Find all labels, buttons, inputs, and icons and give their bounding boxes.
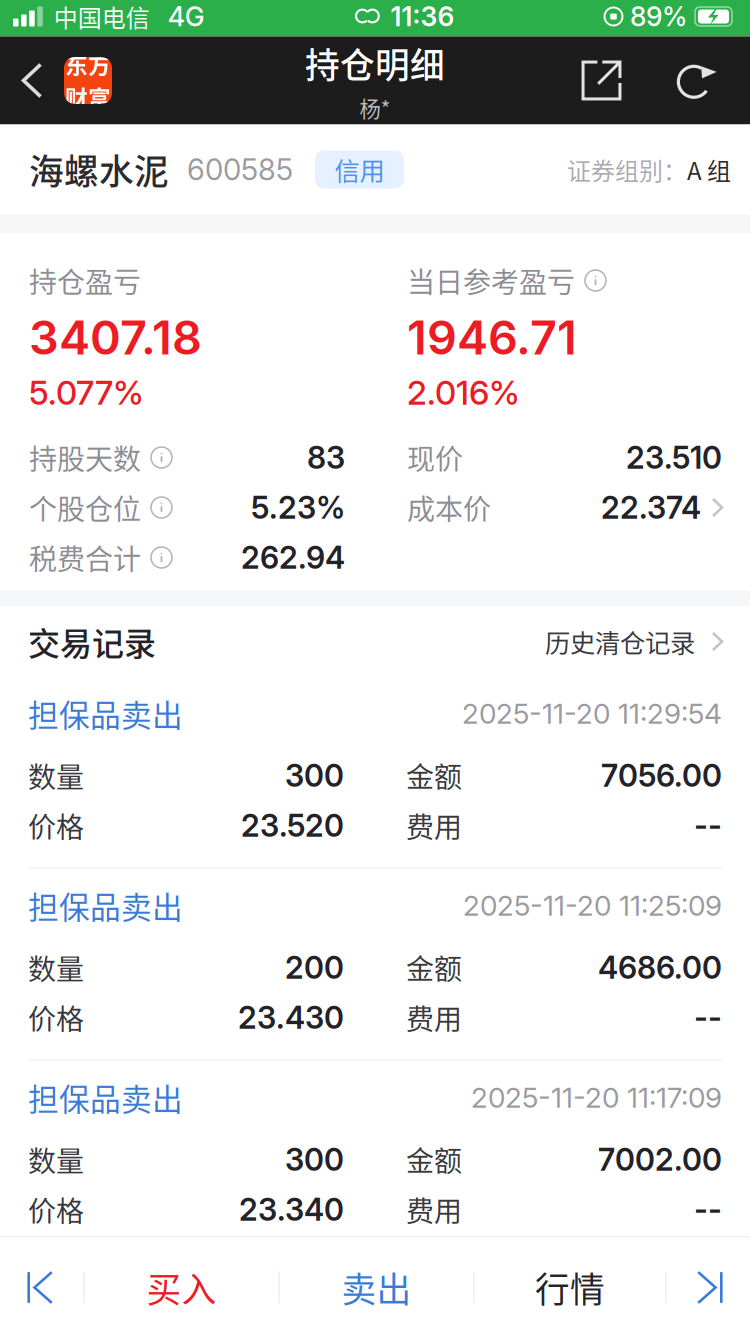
staticText: 4G (168, 0, 205, 33)
staticText: -- (694, 1191, 722, 1228)
staticText: 费用 (406, 805, 462, 846)
staticText: 价格 (28, 1189, 84, 1230)
staticText: 买入 (146, 1262, 216, 1313)
staticText: 担保品卖出 (28, 883, 183, 928)
staticText: 价格 (28, 997, 84, 1038)
staticText: 23.510 (626, 439, 722, 476)
staticText: 成本价 (407, 487, 491, 528)
staticText: 数量 (28, 947, 84, 988)
button[interactable]: 信用 (315, 150, 404, 188)
staticText: 海螺水泥 (29, 144, 169, 195)
staticText: 600585 (187, 152, 293, 187)
staticText: 价格 (28, 805, 84, 846)
staticText: 历史清仓记录 (545, 623, 695, 660)
staticText: 22.374 (601, 489, 701, 526)
button[interactable]: 上一条 (0, 1237, 83, 1334)
staticText: 金额 (406, 1139, 462, 1180)
staticText: 数量 (28, 1139, 84, 1180)
staticText: 2025-11-20 11:17:09 (471, 1081, 722, 1114)
staticText: 23.430 (238, 999, 344, 1036)
button[interactable]: 刷新 (652, 36, 740, 124)
staticText: 证券组别： (567, 152, 687, 187)
staticText: 东方 (65, 47, 111, 80)
staticText: 23.520 (241, 807, 344, 844)
staticText: 7056.00 (601, 757, 722, 794)
staticText: 担保品卖出 (28, 691, 183, 736)
staticText: 中国电信 (54, 0, 150, 34)
staticText: 2025-11-20 11:25:09 (463, 889, 722, 922)
button[interactable]: 历史清仓记录 (545, 623, 722, 660)
staticText: 担保品卖出 (28, 1075, 183, 1120)
staticText: A 组 (687, 152, 731, 187)
button[interactable]: 担保品卖出 (28, 676, 722, 868)
staticText: 200 (285, 949, 344, 986)
staticText: 费用 (406, 997, 462, 1038)
staticText: 5.077% (29, 372, 144, 413)
staticText: 2025-11-20 11:29:54 (462, 697, 722, 730)
staticText: 5.23% (251, 489, 345, 526)
staticText: 262.94 (241, 539, 345, 576)
staticText: 卖出 (341, 1262, 411, 1313)
staticText: 3407.18 (29, 309, 202, 366)
staticText: -- (694, 807, 722, 844)
staticText: 83 (307, 439, 345, 476)
button[interactable]: 担保品卖出 (28, 868, 722, 1060)
button[interactable]: 下一条 (666, 1237, 750, 1334)
button[interactable]: 行情 (474, 1237, 665, 1334)
staticText: -- (694, 999, 722, 1036)
staticText: 持股天数 (29, 437, 141, 478)
staticText: 金额 (406, 947, 462, 988)
staticText: 财富 (65, 81, 111, 114)
staticText: 个股仓位 (29, 487, 141, 528)
staticText: 持仓盈亏 (29, 260, 141, 301)
staticText: 费用 (406, 1189, 462, 1230)
staticText: 300 (285, 1141, 344, 1178)
button[interactable]: 担保品卖出 (28, 1060, 722, 1234)
staticText: 300 (285, 757, 344, 794)
staticText: 4686.00 (598, 949, 722, 986)
staticText: 杨* (359, 92, 390, 123)
staticText: 7002.00 (598, 1141, 722, 1178)
button[interactable]: 卖出 (279, 1237, 473, 1334)
staticText: 11:36 (390, 0, 454, 33)
staticText: 交易记录 (28, 618, 156, 665)
staticText: 税费合计 (29, 537, 141, 578)
button[interactable]: 买入 (84, 1237, 278, 1334)
staticText: 1946.71 (407, 309, 577, 366)
staticText: 数量 (28, 755, 84, 796)
staticText: 持仓明细 (305, 38, 445, 88)
staticText: 23.340 (239, 1191, 344, 1228)
staticText: 89% (630, 0, 687, 33)
staticText: 信用 (334, 151, 384, 188)
button[interactable]: 返回 (0, 36, 64, 124)
staticText: 当日参考盈亏 (407, 260, 575, 301)
staticText: 行情 (535, 1262, 605, 1313)
button[interactable]: 东方财富 (64, 57, 112, 104)
staticText: 现价 (407, 437, 463, 478)
staticText: 金额 (406, 755, 462, 796)
staticText: 2.016% (407, 372, 520, 413)
button[interactable]: 分享 (551, 36, 652, 124)
